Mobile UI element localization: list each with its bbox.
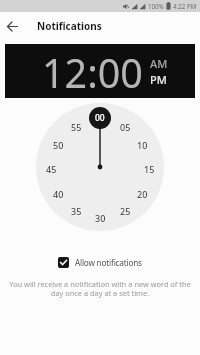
staticText: 35 xyxy=(71,205,82,217)
button[interactable]: 00 xyxy=(89,107,111,129)
button[interactable]: Allow notifications xyxy=(58,257,142,268)
staticText: 100% xyxy=(148,2,164,10)
staticText: 50 xyxy=(53,139,64,151)
staticText: 40 xyxy=(53,188,64,200)
staticText: 45 xyxy=(46,163,57,175)
staticText: 20 xyxy=(137,188,148,200)
button[interactable]: 12:00 xyxy=(42,46,143,100)
button[interactable]: AM xyxy=(150,56,168,71)
staticText: Allow notifications xyxy=(75,257,142,268)
staticText: 30 xyxy=(95,212,106,224)
staticText: 10 xyxy=(137,139,148,151)
staticText: 4:22 PM xyxy=(173,2,197,10)
staticText: Notifications xyxy=(37,19,102,33)
staticText: 55 xyxy=(71,121,82,133)
staticText: 15 xyxy=(144,163,155,175)
button[interactable]: PM xyxy=(150,72,167,87)
staticText: 00 xyxy=(95,112,105,124)
staticText: 25 xyxy=(120,205,131,217)
staticText: 05 xyxy=(120,121,131,133)
staticText: You will receive a notification with a n… xyxy=(6,279,194,298)
button[interactable] xyxy=(0,12,24,40)
